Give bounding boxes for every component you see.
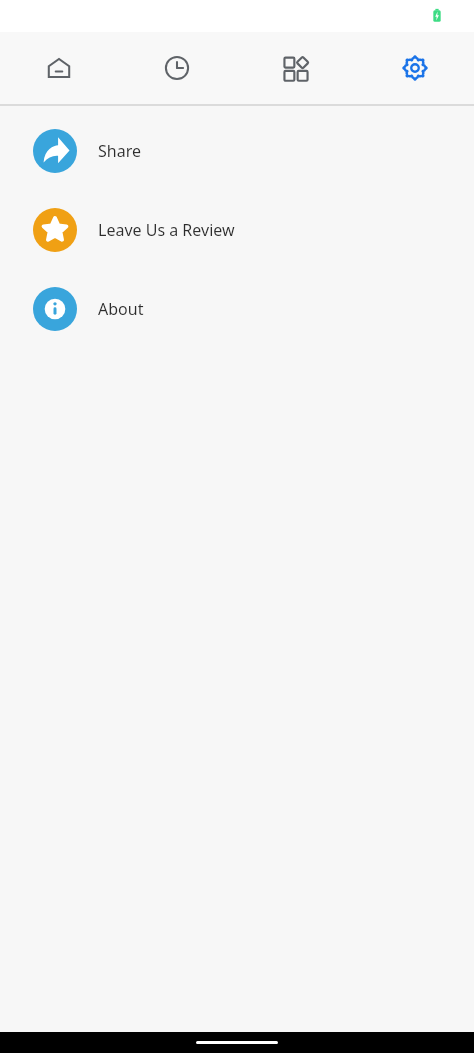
button[interactable]: About — [0, 287, 474, 331]
button[interactable]: Share — [0, 129, 474, 173]
button[interactable]: Settings — [355, 32, 474, 104]
staticText: About — [98, 298, 144, 320]
button[interactable]: Recent — [118, 32, 236, 104]
staticText: Share — [98, 140, 141, 162]
button[interactable]: Home — [0, 32, 118, 104]
button[interactable]: Leave Us a Review — [0, 208, 474, 252]
staticText: Leave Us a Review — [98, 219, 235, 241]
button[interactable]: Categories — [236, 32, 355, 104]
